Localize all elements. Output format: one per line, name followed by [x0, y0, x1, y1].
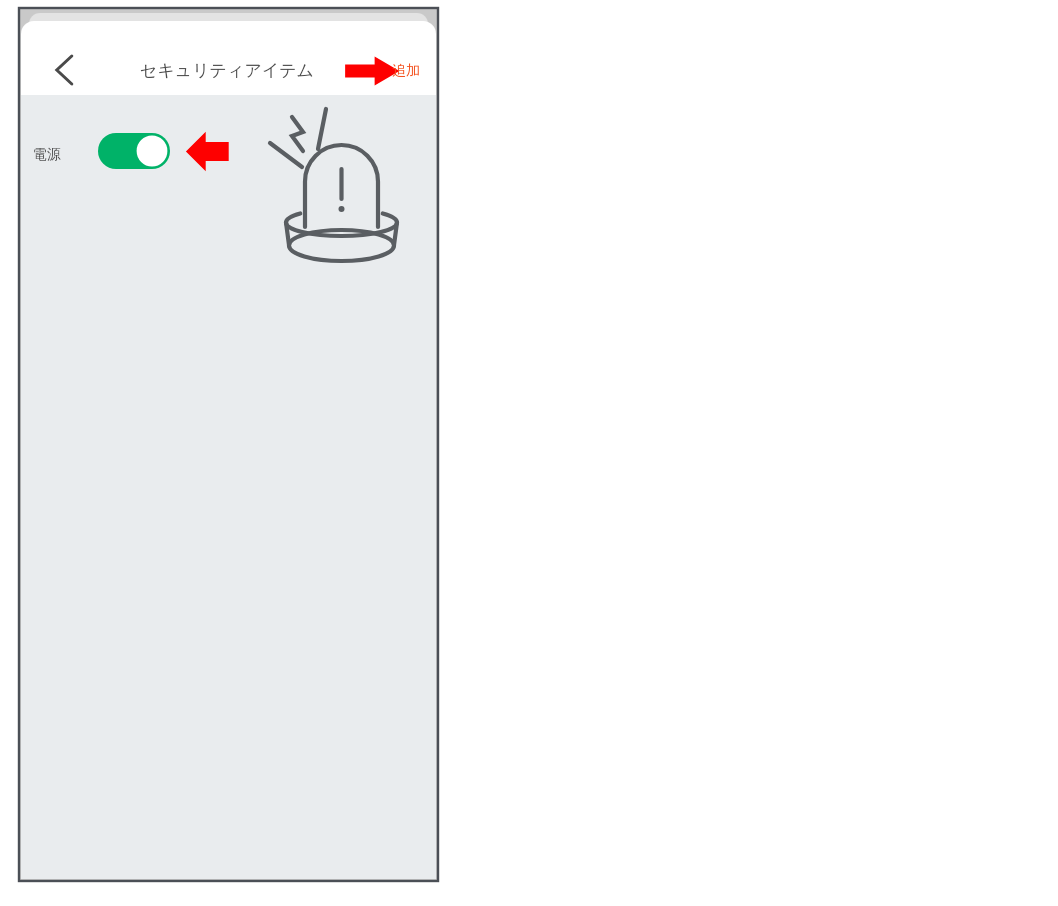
button[interactable]: 追加 — [381, 52, 431, 90]
staticText: 追加 — [392, 62, 420, 80]
button[interactable]: 電源 オン — [98, 133, 170, 169]
button[interactable]: 戻る — [35, 46, 83, 94]
staticText: 電源 — [33, 146, 61, 164]
staticText: セキュリティアイテム — [140, 60, 314, 81]
